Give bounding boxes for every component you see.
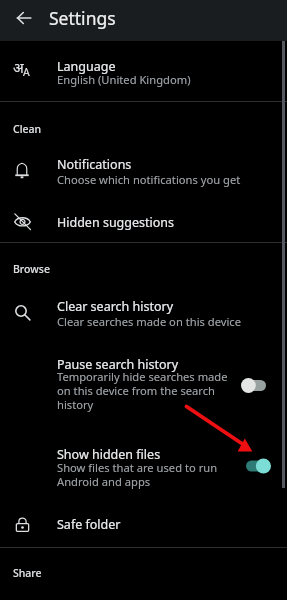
button[interactable]: Notifications — [0, 147, 287, 197]
staticText: Choose which notifications you get — [57, 172, 241, 187]
staticText: Show hidden files — [57, 446, 161, 463]
button[interactable]: Hidden suggestions — [0, 200, 287, 242]
staticText: Pause search history — [57, 356, 179, 373]
button[interactable]: Pause search history toggle — [241, 378, 266, 393]
button[interactable]: Pause search history — [0, 352, 287, 420]
staticText: Safe folder — [57, 516, 121, 533]
staticText: English (United Kingdom) — [57, 72, 191, 87]
staticText: A — [23, 65, 30, 79]
staticText: Show files that are used to run Android … — [57, 460, 218, 489]
staticText: Clear searches made on this device — [57, 314, 242, 329]
staticText: Hidden suggestions — [57, 214, 175, 231]
button[interactable]: Show hidden files — [0, 434, 287, 498]
staticText: अ — [13, 58, 24, 77]
staticText: Clean — [13, 122, 42, 136]
staticText: Clear search history — [57, 298, 174, 315]
button[interactable]: Show hidden files toggle — [246, 458, 271, 474]
staticText: Browse — [13, 262, 50, 276]
staticText: Temporarily hide searches made on this d… — [57, 369, 228, 412]
staticText: Share — [13, 566, 42, 580]
button[interactable]: Language — [0, 42, 287, 101]
button[interactable]: Back — [0, 0, 46, 41]
button[interactable]: Safe folder — [0, 502, 287, 547]
staticText: Language — [57, 58, 116, 75]
staticText: Notifications — [57, 156, 132, 173]
button[interactable]: Clear search history — [0, 290, 287, 340]
staticText: Settings — [49, 6, 116, 30]
